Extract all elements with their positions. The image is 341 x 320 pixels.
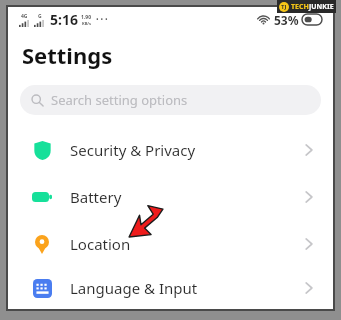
button[interactable]: Battery [8,173,333,220]
staticText: G [38,13,42,20]
staticText: Battery [70,187,122,207]
staticText: TECH [291,2,309,12]
staticText: Language & Input [70,278,198,298]
button[interactable]: Security & Privacy [8,126,333,173]
staticText: • • • [96,15,108,25]
staticText: 5:16 [50,10,78,29]
button[interactable]: Location [8,220,333,267]
staticText: TJ [281,3,287,11]
staticText: 53% [274,12,299,28]
other: Annotation arrow pointing to Location [128,205,164,239]
staticText: KB/s [82,21,91,26]
staticText: 1.90 [81,14,91,21]
button[interactable]: Search setting options [20,85,321,115]
staticText: 4G [21,13,28,20]
staticText: Security & Privacy [70,140,196,160]
staticText: JUNKIE [309,2,334,12]
staticText: Location [70,234,131,254]
button[interactable]: Language & Input [8,267,333,309]
staticText: Search setting options [51,91,188,109]
staticText: Settings [22,40,113,70]
